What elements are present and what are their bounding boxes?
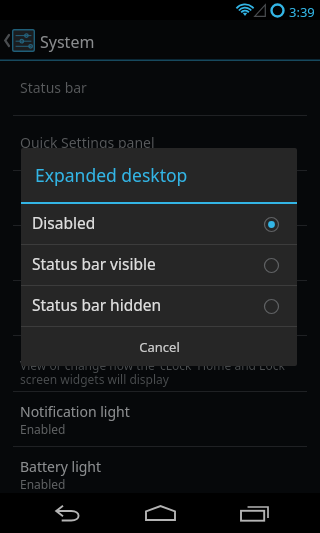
button[interactable]: Back bbox=[44, 493, 90, 533]
button[interactable]: Status bar bbox=[0, 60, 320, 115]
button[interactable]: Notification light bbox=[0, 391, 320, 446]
staticText: Navigation bar bbox=[20, 243, 118, 262]
staticText: System bbox=[40, 31, 95, 53]
button[interactable]: Navigate up bbox=[0, 20, 320, 60]
staticText: Expanded desktop bbox=[35, 163, 188, 187]
staticText: Status bar visible bbox=[32, 253, 156, 274]
button[interactable]: Disabled bbox=[21, 204, 297, 244]
other: Home bbox=[145, 505, 176, 521]
staticText: Notification light bbox=[20, 402, 130, 421]
button[interactable]: Cancel bbox=[21, 327, 297, 366]
button[interactable]: Lock screen widgets bbox=[0, 335, 320, 391]
button[interactable]: Battery light bbox=[0, 446, 320, 501]
button[interactable]: Navigation bar bbox=[0, 225, 320, 280]
staticText: Status bar hidden bbox=[32, 294, 162, 315]
staticText: Lock screen widgets bbox=[20, 340, 153, 359]
button[interactable]: Quick Settings panel bbox=[0, 115, 320, 170]
staticText: Quick Settings panel bbox=[20, 133, 155, 152]
staticText: Notification drawer bbox=[20, 188, 147, 207]
staticText: Enabled bbox=[20, 476, 66, 492]
staticText: View or change how the 'cLock' Home and … bbox=[20, 357, 285, 388]
staticText: Disabled bbox=[32, 212, 96, 233]
other: Recent apps bbox=[240, 506, 269, 521]
button[interactable]: Status bar visible bbox=[21, 245, 297, 285]
staticText: Status bar bbox=[20, 78, 87, 97]
button[interactable]: Home bbox=[137, 493, 183, 533]
other: Back bbox=[53, 505, 82, 522]
staticText: Cancel bbox=[139, 338, 180, 356]
button[interactable]: Status bar hidden bbox=[21, 286, 297, 326]
staticText: Battery light bbox=[20, 457, 102, 476]
button[interactable]: Expanded desktop bbox=[0, 280, 320, 335]
other: Navigate up bbox=[4, 34, 10, 47]
staticText: 3:39 bbox=[289, 3, 315, 21]
staticText: Enabled bbox=[20, 421, 66, 437]
button[interactable]: Recent apps bbox=[231, 493, 277, 533]
staticText: Expanded desktop bbox=[20, 291, 142, 310]
button[interactable]: Notification drawer bbox=[0, 170, 320, 225]
staticText: Disabled bbox=[20, 310, 69, 326]
